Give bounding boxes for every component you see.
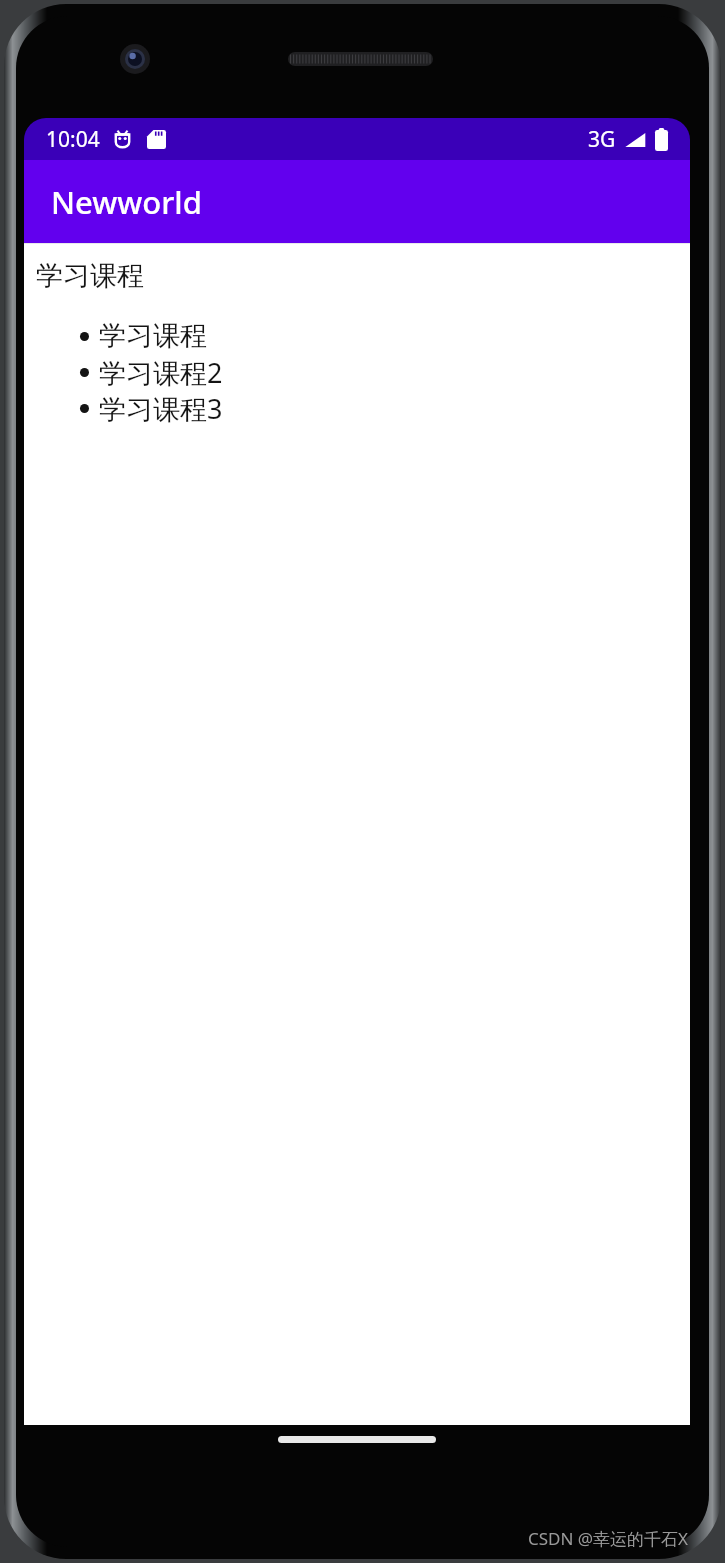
staticText: CSDN @幸运的千石X — [528, 1527, 689, 1550]
staticText: 学习课程3 — [99, 390, 223, 426]
button[interactable]: 学习课程 — [36, 259, 144, 293]
staticText: 10:04 — [46, 125, 100, 154]
button[interactable]: 学习课程3 — [24, 390, 690, 426]
staticText: 学习课程2 — [99, 354, 223, 390]
button[interactable]: Newworld — [24, 160, 690, 243]
button[interactable]: 学习课程 — [24, 318, 690, 354]
button[interactable]: 学习课程2 — [24, 354, 690, 390]
staticText: Newworld — [51, 181, 202, 223]
staticText: 学习课程 — [99, 319, 207, 353]
staticText: 3G — [588, 125, 616, 154]
